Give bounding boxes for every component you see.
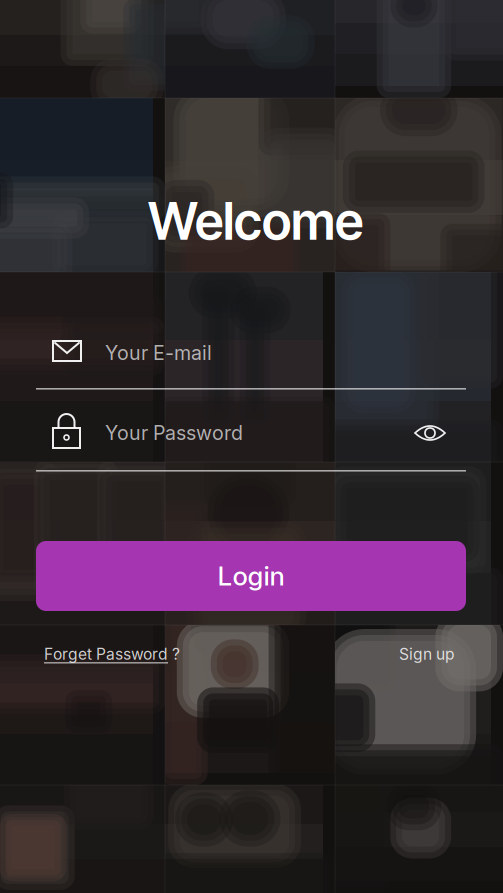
staticText: ? [168,645,180,663]
staticText: Your Password [105,421,243,445]
button[interactable]: Your Password [36,407,466,471]
staticText: Sign up [399,645,455,663]
button[interactable]: Show password [404,415,456,451]
button[interactable]: Your E-mail [36,331,466,389]
button[interactable]: Sign up [399,641,455,667]
button[interactable]: Forget Password [44,641,180,667]
staticText: Welcome [148,190,363,252]
button[interactable]: Login [36,541,466,611]
staticText: Your E-mail [105,341,212,365]
staticText: Forget Password [44,645,168,663]
staticText: Login [217,560,284,592]
